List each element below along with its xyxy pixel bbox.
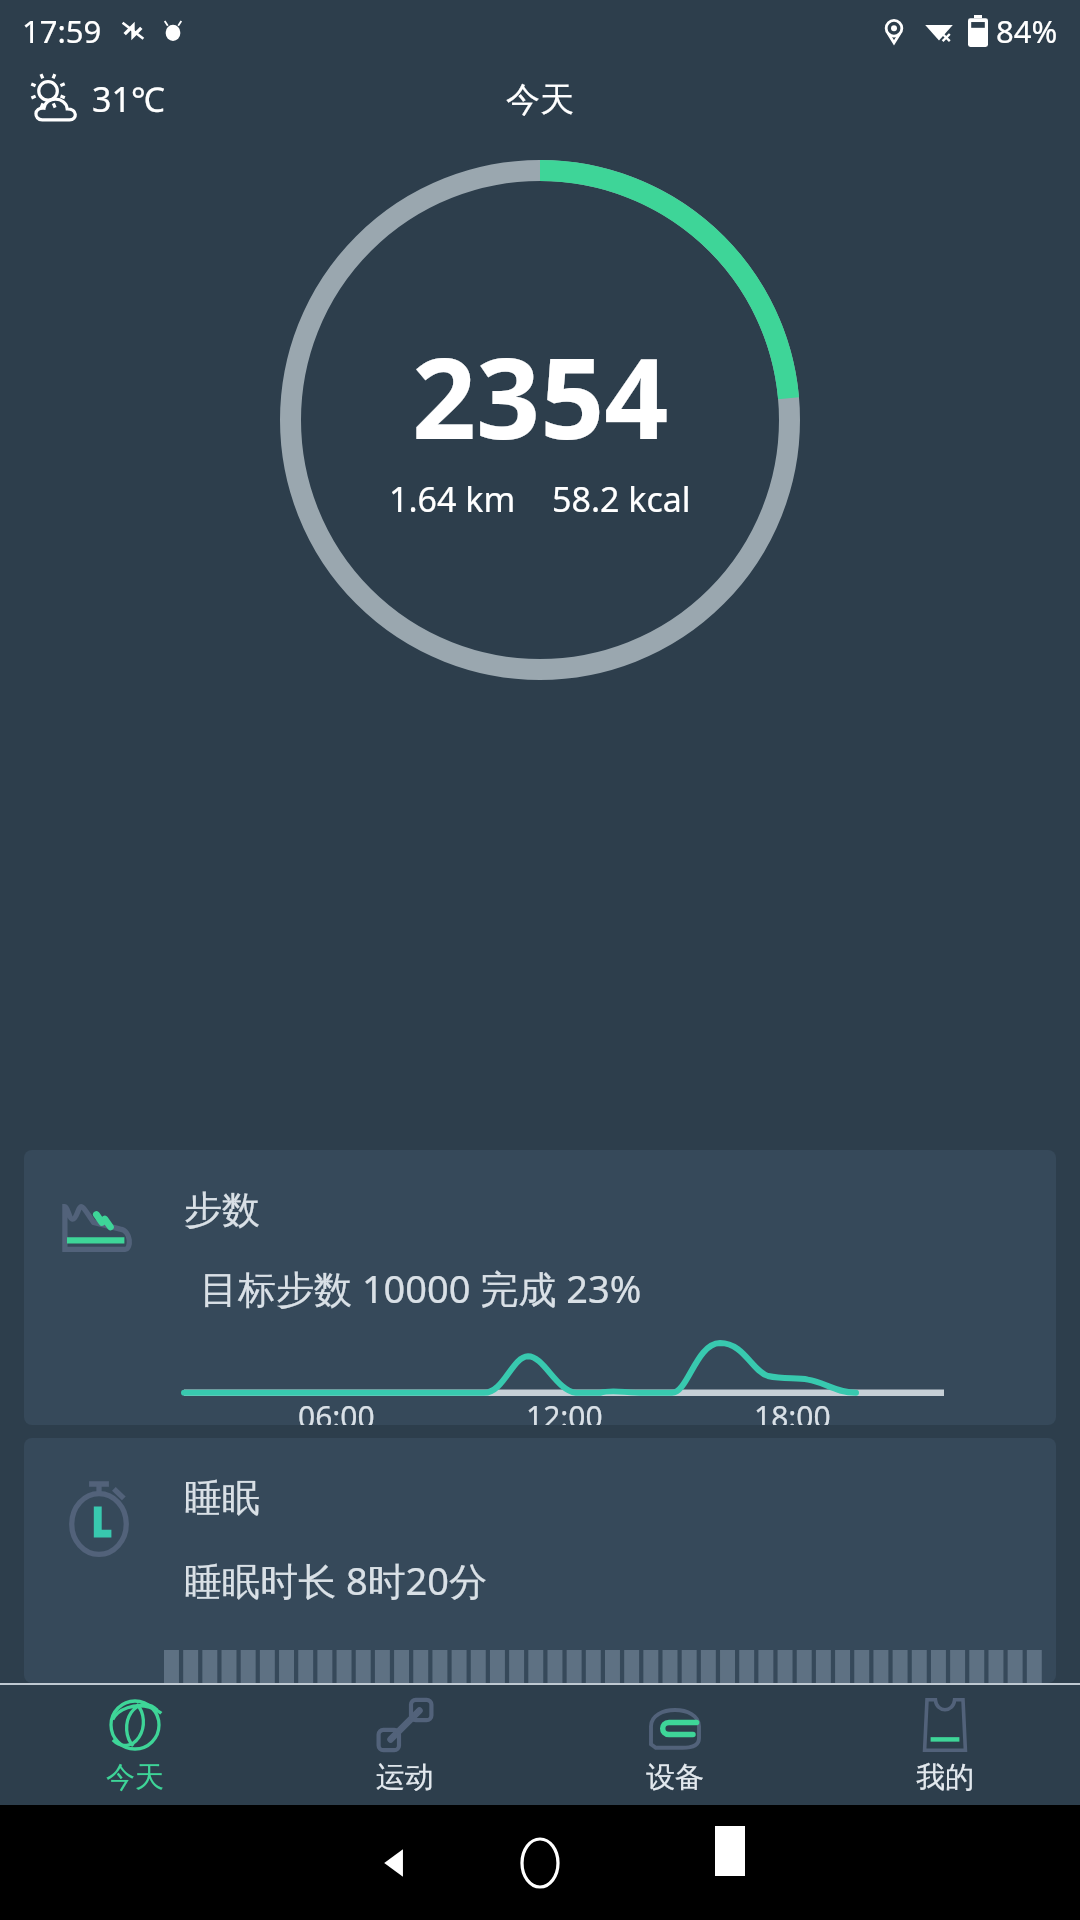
staticText: 17:59 bbox=[22, 10, 102, 52]
staticText: 06:00 bbox=[298, 1396, 375, 1425]
other: 今天 bbox=[105, 1695, 165, 1755]
other: Home bbox=[522, 1839, 558, 1887]
button[interactable]: 睡眠 bbox=[24, 1438, 1056, 1683]
staticText: 今天 bbox=[506, 78, 574, 121]
staticText: 睡眠时长 8时20分 bbox=[184, 1554, 488, 1606]
staticText: 58.2 kcal bbox=[552, 476, 691, 522]
button[interactable]: 步数 bbox=[24, 1150, 1056, 1425]
button[interactable]: 运动 bbox=[270, 1685, 540, 1805]
other: 运动 bbox=[375, 1695, 435, 1755]
staticText: 2354 bbox=[412, 319, 669, 472]
staticText: 31℃ bbox=[92, 76, 165, 122]
staticText: 睡眠 bbox=[184, 1474, 260, 1522]
button[interactable]: 31℃ bbox=[22, 66, 169, 132]
staticText: 18:00 bbox=[754, 1396, 831, 1425]
button[interactable]: 设备 bbox=[540, 1685, 810, 1805]
staticText: 12:00 bbox=[526, 1396, 603, 1425]
other: 我的 bbox=[915, 1695, 975, 1755]
staticText: 运动 bbox=[376, 1759, 434, 1796]
other: 设备 bbox=[645, 1695, 705, 1755]
button[interactable]: 今天 bbox=[0, 1685, 270, 1805]
staticText: 步数 bbox=[184, 1186, 260, 1234]
staticText: 设备 bbox=[646, 1759, 704, 1796]
staticText: 目标步数 10000 完成 23% bbox=[200, 1262, 642, 1314]
staticText: 1.64 km bbox=[389, 476, 516, 522]
staticText: 84% bbox=[996, 10, 1058, 52]
staticText: 今天 bbox=[106, 1759, 164, 1796]
other: Back bbox=[377, 1845, 413, 1881]
button[interactable]: 我的 bbox=[810, 1685, 1080, 1805]
staticText: 我的 bbox=[916, 1759, 974, 1796]
